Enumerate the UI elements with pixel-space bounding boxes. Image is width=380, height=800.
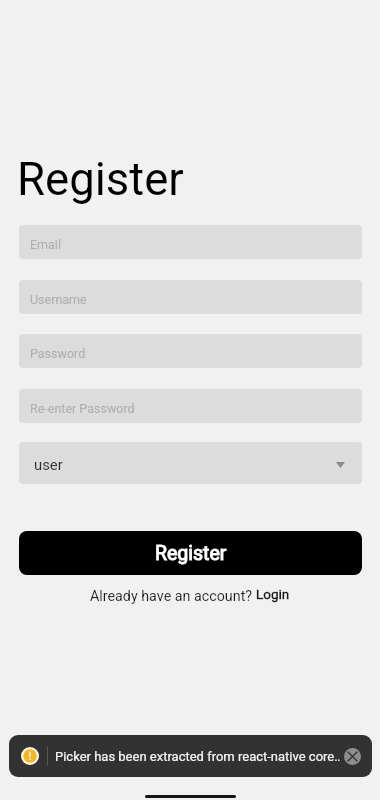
button[interactable]: Username xyxy=(19,280,362,314)
staticText: user xyxy=(34,456,63,473)
staticText: Picker has been extracted from react-nat… xyxy=(55,749,340,764)
button[interactable]: Re-enter Password xyxy=(19,389,362,423)
staticText: Already have an account? xyxy=(90,588,256,605)
staticText: Email xyxy=(30,237,61,252)
button[interactable]: Select role xyxy=(19,442,362,484)
button[interactable]: Password xyxy=(19,334,362,368)
button[interactable]: Login xyxy=(256,589,290,605)
button[interactable]: Dismiss xyxy=(344,748,361,765)
button[interactable]: Register xyxy=(19,531,362,575)
staticText: Register xyxy=(17,153,184,206)
staticText: Re-enter Password xyxy=(30,401,135,416)
button[interactable]: Email xyxy=(19,225,362,259)
staticText: Password xyxy=(30,346,86,361)
staticText: Register xyxy=(155,542,227,565)
staticText: Username xyxy=(30,292,87,307)
